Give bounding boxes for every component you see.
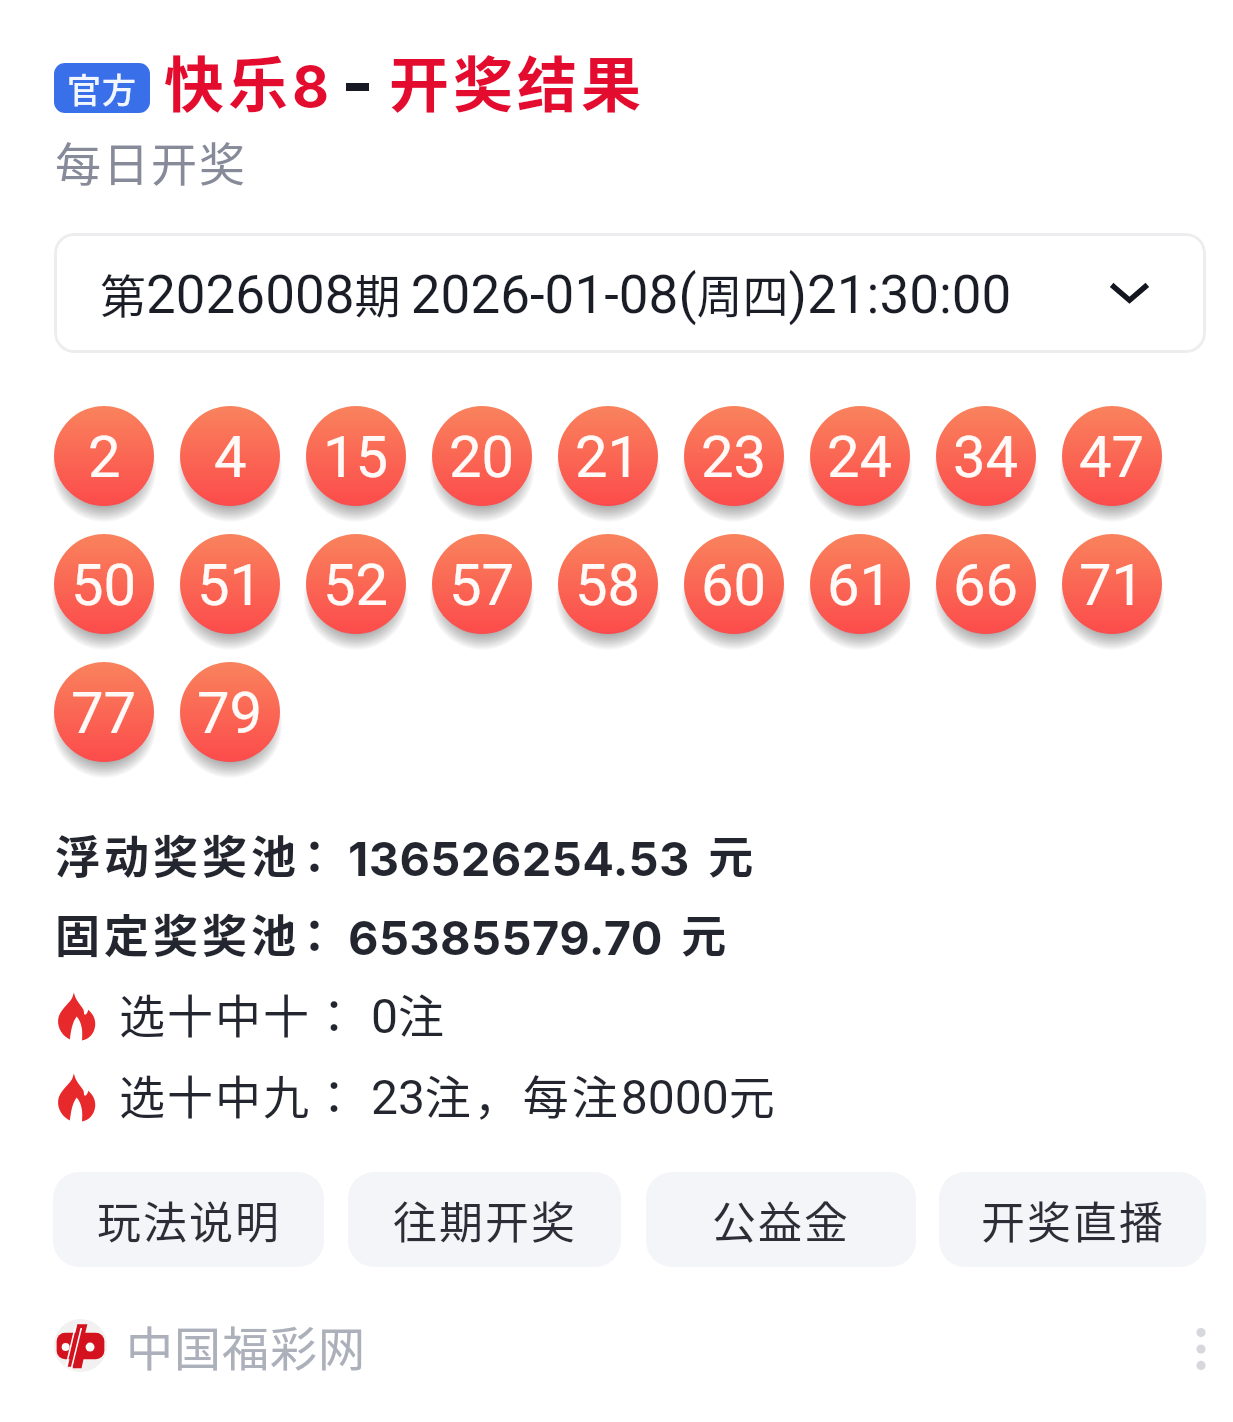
staticText: 51 [197, 551, 263, 619]
button[interactable]: 公益金 [646, 1172, 916, 1267]
staticText: 79 [197, 679, 263, 747]
staticText: 50 [71, 551, 137, 619]
button[interactable]: 玩法说明 [53, 1172, 324, 1267]
staticText: 23 [701, 423, 767, 491]
staticText: 52 [323, 551, 389, 619]
staticText: 136526254.53 [348, 830, 690, 887]
staticText: 58 [575, 551, 641, 619]
staticText: ： [292, 901, 338, 966]
staticText: 元 [671, 901, 727, 966]
staticText: 2 [88, 423, 121, 491]
staticText: 24 [827, 423, 893, 491]
staticText: 第2026008期 2026-01-08(周四)21:30:00 [100, 260, 1012, 327]
button[interactable]: 官方 [54, 63, 150, 113]
button[interactable]: 开奖直播 [939, 1172, 1206, 1267]
staticText: 21 [575, 423, 641, 491]
staticText: 固定奖奖池 [55, 901, 301, 966]
staticText: 34 [953, 423, 1019, 491]
staticText: 47 [1079, 423, 1145, 491]
staticText: 61 [827, 551, 893, 619]
button[interactable]: 第2026008期 2026-01-08(周四)21:30:00 [54, 233, 1206, 353]
staticText: 往期开奖 [393, 1188, 577, 1252]
staticText: 开奖直播 [981, 1188, 1165, 1252]
button[interactable]: 往期开奖 [348, 1172, 621, 1267]
staticText: 4 [214, 423, 247, 491]
staticText: 选十中九： 23注，每注8000元 [119, 1061, 775, 1128]
staticText: 20 [449, 423, 515, 491]
staticText: 元 [698, 822, 754, 887]
staticText: 60 [701, 551, 767, 619]
staticText: 公益金 [712, 1188, 850, 1252]
staticText: 中国福彩网 [126, 1311, 366, 1379]
staticText: 选十中十： 0注 [119, 980, 444, 1047]
staticText: 15 [323, 423, 389, 491]
staticText: 每日开奖 [54, 128, 246, 195]
staticText: 开奖结果 [389, 37, 645, 124]
staticText: 57 [449, 551, 515, 619]
staticText: 71 [1079, 551, 1145, 619]
staticText: 65385579.70 [348, 909, 663, 966]
staticText: 66 [953, 551, 1019, 619]
button[interactable]: More options [1171, 1315, 1231, 1375]
staticText: 官方 [67, 64, 137, 113]
staticText: ： [292, 822, 338, 887]
staticText: 玩法说明 [97, 1188, 281, 1252]
staticText: 快乐8 [164, 37, 330, 124]
staticText: 77 [71, 679, 137, 747]
staticText: 浮动奖奖池 [55, 822, 301, 887]
